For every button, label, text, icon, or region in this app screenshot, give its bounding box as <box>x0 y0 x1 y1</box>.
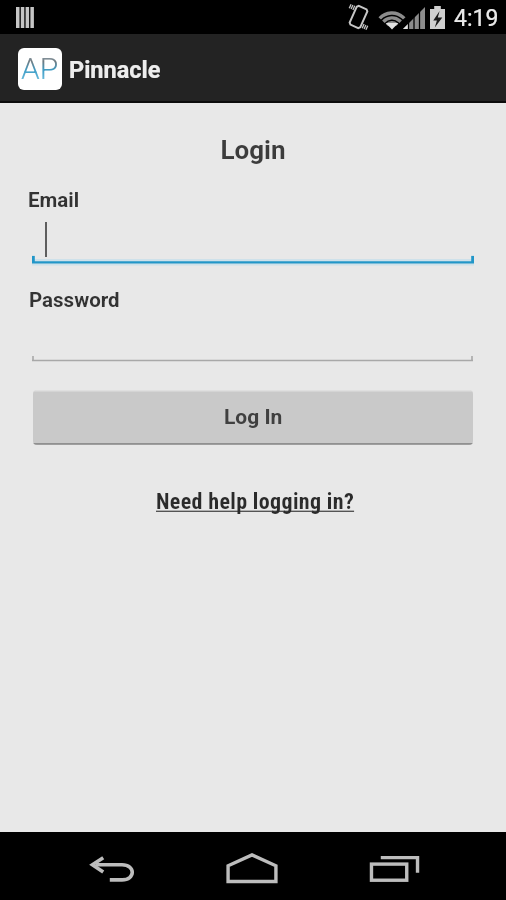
staticText: Password <box>29 288 120 312</box>
button[interactable]: Password input field <box>32 318 473 362</box>
staticText: AP <box>21 51 59 86</box>
staticText: Login <box>0 135 506 165</box>
staticText: Log In <box>224 405 283 430</box>
button[interactable]: Back <box>78 836 150 900</box>
button[interactable]: App logo <box>18 48 62 90</box>
staticText: Pinnacle <box>69 56 161 84</box>
staticText: 4:19 <box>454 5 499 32</box>
button[interactable]: Home <box>216 834 288 900</box>
staticText: Email <box>28 188 80 212</box>
button[interactable]: Need help logging in? <box>156 489 355 515</box>
button[interactable]: Log In <box>33 390 473 445</box>
button[interactable]: Email input field <box>32 218 474 264</box>
button[interactable]: Recent apps <box>358 834 430 900</box>
